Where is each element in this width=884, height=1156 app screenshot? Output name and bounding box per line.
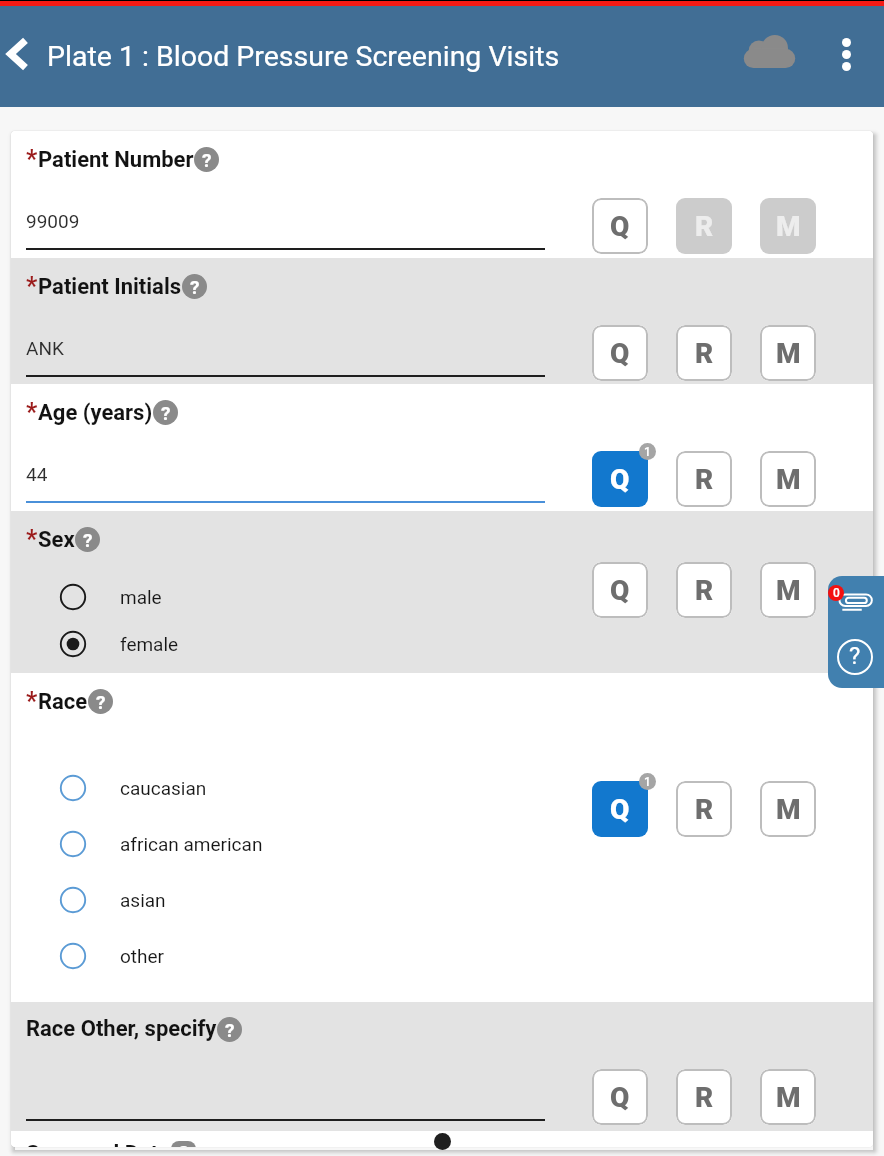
staticText: R xyxy=(695,793,714,826)
staticText: ? xyxy=(161,402,171,424)
staticText: M xyxy=(776,793,801,826)
button[interactable]: M xyxy=(760,198,816,254)
staticText: 1 xyxy=(644,445,651,459)
button[interactable]: Q xyxy=(592,451,648,507)
button[interactable]: M xyxy=(760,451,816,507)
staticText: Q xyxy=(610,574,630,607)
staticText: M xyxy=(776,463,801,496)
staticText: R xyxy=(695,463,714,496)
staticText: R xyxy=(695,210,714,243)
button[interactable]: Help xyxy=(171,1141,196,1147)
staticText: caucasian xyxy=(120,777,207,799)
button[interactable]: R xyxy=(676,781,732,837)
staticText: * xyxy=(26,272,38,301)
button[interactable]: Q xyxy=(592,325,648,381)
button[interactable]: Help xyxy=(182,274,207,299)
button[interactable]: Help xyxy=(194,147,219,172)
staticText: M xyxy=(776,337,801,370)
staticText: * xyxy=(26,687,38,716)
button[interactable]: Q xyxy=(592,781,648,837)
button[interactable]: M xyxy=(760,1069,816,1125)
staticText: ANK xyxy=(26,337,64,359)
staticText: Q xyxy=(610,793,630,826)
button[interactable]: Q xyxy=(592,562,648,618)
button[interactable]: female xyxy=(11,620,873,667)
button[interactable]: R xyxy=(676,325,732,381)
button[interactable]: Help xyxy=(88,689,113,714)
button[interactable]: Attachments xyxy=(834,590,878,618)
staticText: Q xyxy=(610,210,630,243)
staticText: asian xyxy=(120,889,166,911)
staticText: ? xyxy=(202,149,212,171)
button[interactable]: Help xyxy=(153,400,178,425)
button[interactable]: african american xyxy=(11,816,873,872)
button[interactable]: R xyxy=(676,562,732,618)
staticText: R xyxy=(695,1081,714,1114)
staticText: ? xyxy=(83,529,93,551)
staticText: 99009 xyxy=(26,210,80,232)
staticText: Race xyxy=(38,689,88,715)
staticText: * xyxy=(26,398,38,427)
staticText: other xyxy=(120,945,165,967)
button[interactable]: male xyxy=(11,573,873,620)
staticText: Patient Number xyxy=(38,147,194,173)
staticText: ? xyxy=(190,276,200,298)
staticText: Sex xyxy=(38,527,75,553)
staticText: 44 xyxy=(26,463,48,485)
staticText: Plate 1 : Blood Pressure Screening Visit… xyxy=(47,40,560,73)
button[interactable]: Help xyxy=(217,1017,242,1042)
staticText: M xyxy=(776,1081,801,1114)
staticText: Age (years) xyxy=(38,400,153,426)
button[interactable]: M xyxy=(760,562,816,618)
staticText: M xyxy=(776,574,801,607)
staticText: R xyxy=(695,337,714,370)
staticText: female xyxy=(120,633,179,655)
button[interactable]: R xyxy=(676,198,732,254)
staticText: ? xyxy=(179,1141,189,1147)
staticText: Q xyxy=(610,337,630,370)
staticText: 0 xyxy=(833,586,840,600)
button[interactable]: M xyxy=(760,781,816,837)
staticText: ? xyxy=(849,642,861,670)
staticText: Race Other, specify xyxy=(26,1016,217,1042)
button[interactable]: other xyxy=(11,928,873,984)
staticText: african american xyxy=(120,833,263,855)
button[interactable]: Back xyxy=(0,26,46,82)
button[interactable]: R xyxy=(676,451,732,507)
staticText: R xyxy=(695,574,714,607)
button[interactable]: Help xyxy=(75,527,100,552)
button[interactable]: Help xyxy=(836,638,874,676)
button[interactable]: More options xyxy=(818,26,874,82)
staticText: male xyxy=(120,586,162,608)
staticText: Patient Initials xyxy=(38,274,182,300)
staticText: 1 xyxy=(644,775,651,789)
staticText: * xyxy=(26,145,38,174)
button[interactable]: R xyxy=(676,1069,732,1125)
button[interactable]: Sync status xyxy=(734,16,804,86)
button[interactable]: Q xyxy=(592,1069,648,1125)
staticText: M xyxy=(776,210,801,243)
button[interactable]: Q xyxy=(592,198,648,254)
button[interactable]: caucasian xyxy=(11,760,873,816)
staticText: Q xyxy=(610,463,630,496)
button[interactable]: M xyxy=(760,325,816,381)
staticText: ? xyxy=(225,1019,235,1041)
staticText: Q xyxy=(610,1081,630,1114)
button[interactable]: asian xyxy=(11,872,873,928)
staticText: Screened Date xyxy=(26,1141,171,1147)
staticText: * xyxy=(26,525,38,554)
staticText: ? xyxy=(96,691,106,713)
